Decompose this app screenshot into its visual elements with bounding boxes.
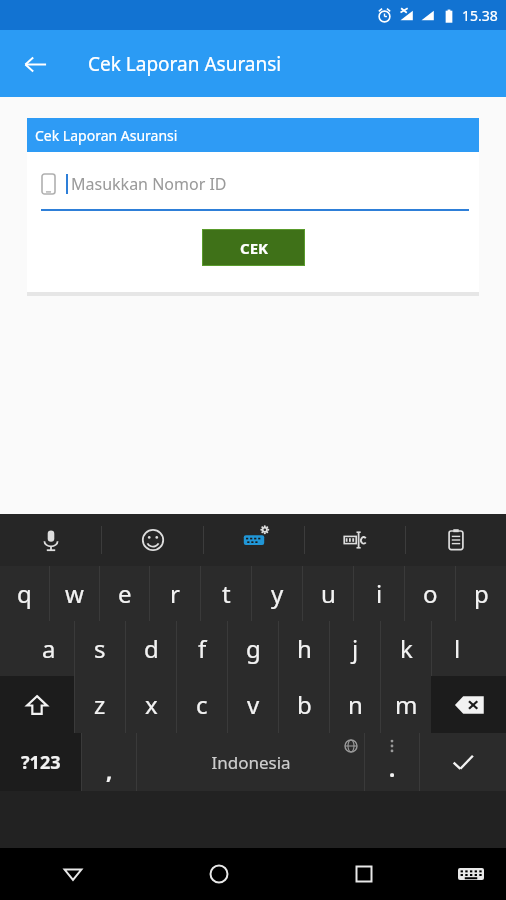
button[interactable]: h bbox=[279, 621, 329, 676]
staticText: Indonesia bbox=[211, 751, 291, 774]
button[interactable]: u bbox=[303, 566, 353, 621]
button[interactable]: r bbox=[150, 566, 200, 621]
staticText: b bbox=[297, 688, 312, 721]
staticText: Masukkan Nomor ID bbox=[71, 173, 227, 195]
button[interactable]: l bbox=[432, 621, 482, 676]
button[interactable]: f bbox=[177, 621, 227, 676]
button[interactable]: e bbox=[100, 566, 149, 621]
button[interactable]: a bbox=[24, 621, 74, 676]
button[interactable]: d bbox=[126, 621, 176, 676]
staticText: y bbox=[271, 577, 284, 610]
button[interactable]: Masukkan Nomor ID bbox=[41, 173, 469, 211]
staticText: o bbox=[423, 577, 438, 610]
staticText: k bbox=[400, 632, 413, 665]
staticText: n bbox=[348, 688, 363, 721]
staticText: Cek Laporan Asuransi bbox=[88, 51, 282, 77]
button[interactable]: . bbox=[365, 733, 419, 791]
staticText: s bbox=[94, 632, 106, 665]
button[interactable]: i bbox=[354, 566, 404, 621]
staticText: m bbox=[395, 688, 418, 721]
staticText: f bbox=[198, 632, 207, 665]
button[interactable]: CEK bbox=[202, 229, 305, 266]
staticText: Cek Laporan Asuransi bbox=[35, 126, 178, 145]
button[interactable]: Clipboard bbox=[406, 514, 506, 566]
staticText: l bbox=[454, 632, 461, 665]
staticText: e bbox=[118, 577, 132, 610]
staticText: 15.38 bbox=[462, 6, 498, 25]
button[interactable]: c bbox=[177, 676, 227, 733]
staticText: g bbox=[246, 632, 261, 665]
staticText: x bbox=[145, 688, 158, 721]
button[interactable]: Hide keyboard bbox=[436, 848, 506, 900]
button[interactable]: n bbox=[330, 676, 380, 733]
button[interactable]: Backspace bbox=[431, 676, 506, 733]
button[interactable]: Shift bbox=[0, 676, 74, 733]
button[interactable]: Emoji bbox=[102, 514, 203, 566]
button[interactable]: o bbox=[405, 566, 455, 621]
button[interactable]: , bbox=[82, 733, 136, 791]
button[interactable]: y bbox=[252, 566, 302, 621]
button[interactable]: Recent apps bbox=[291, 848, 436, 900]
staticText: p bbox=[474, 577, 489, 610]
staticText: , bbox=[106, 755, 113, 785]
staticText: h bbox=[297, 632, 312, 665]
staticText: d bbox=[144, 632, 159, 665]
staticText: t bbox=[222, 577, 231, 610]
staticText: r bbox=[170, 577, 180, 610]
button[interactable]: t bbox=[201, 566, 251, 621]
button[interactable]: m bbox=[381, 676, 431, 733]
staticText: q bbox=[17, 577, 32, 610]
button[interactable]: w bbox=[50, 566, 99, 621]
button[interactable]: Voice input bbox=[0, 514, 101, 566]
button[interactable]: k bbox=[381, 621, 431, 676]
staticText: j bbox=[352, 632, 359, 665]
button[interactable]: s bbox=[75, 621, 125, 676]
button[interactable]: Home bbox=[146, 848, 291, 900]
staticText: c bbox=[196, 688, 208, 721]
staticText: i bbox=[376, 577, 383, 610]
button[interactable]: Back bbox=[14, 43, 56, 85]
button[interactable]: g bbox=[228, 621, 278, 676]
button[interactable]: z bbox=[75, 676, 125, 733]
button[interactable]: ?123 bbox=[0, 733, 81, 791]
staticText: ?123 bbox=[21, 750, 61, 775]
button[interactable]: p bbox=[456, 566, 506, 621]
button[interactable]: x bbox=[126, 676, 176, 733]
button[interactable]: q bbox=[0, 566, 49, 621]
staticText: w bbox=[65, 577, 84, 610]
staticText: . bbox=[389, 753, 396, 783]
button[interactable]: b bbox=[279, 676, 329, 733]
button[interactable]: Enter bbox=[420, 733, 506, 791]
button[interactable]: j bbox=[330, 621, 380, 676]
button[interactable]: Back bbox=[0, 848, 146, 900]
staticText: z bbox=[94, 688, 106, 721]
button[interactable]: Keyboard settings bbox=[204, 514, 304, 566]
staticText: a bbox=[42, 632, 56, 665]
button[interactable]: v bbox=[228, 676, 278, 733]
staticText: CEK bbox=[240, 238, 268, 258]
staticText: u bbox=[321, 577, 336, 610]
button[interactable]: Text editing bbox=[305, 514, 405, 566]
button[interactable]: Indonesia bbox=[137, 733, 364, 791]
staticText: v bbox=[247, 688, 260, 721]
